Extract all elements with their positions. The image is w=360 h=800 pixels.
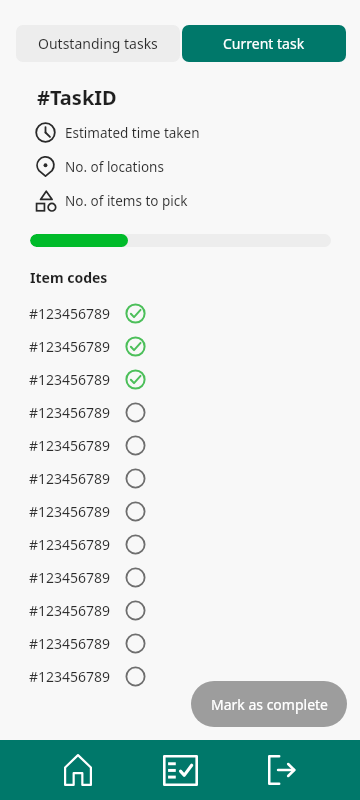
staticText: No. of items to pick — [65, 192, 188, 210]
button[interactable]: #123456789 — [0, 429, 360, 462]
staticText: #123456789 — [29, 436, 111, 455]
button[interactable]: Log out — [231, 740, 333, 800]
staticText: No. of locations — [65, 158, 164, 176]
staticText: #123456789 — [29, 469, 111, 488]
staticText: Outstanding tasks — [38, 34, 158, 53]
button[interactable]: #123456789 — [0, 462, 360, 495]
staticText: #123456789 — [29, 304, 111, 323]
staticText: Estimated time taken — [65, 124, 200, 142]
staticText: Mark as complete — [211, 695, 328, 714]
staticText: #123456789 — [29, 568, 111, 587]
staticText: #TaskID — [37, 84, 117, 111]
button[interactable]: #123456789 — [0, 660, 360, 693]
button[interactable]: #123456789 — [0, 330, 360, 363]
button[interactable]: #123456789 — [0, 396, 360, 429]
button[interactable]: Tasks — [129, 740, 231, 800]
staticText: #123456789 — [29, 634, 111, 653]
button[interactable]: #123456789 — [0, 594, 360, 627]
button[interactable]: #123456789 — [0, 528, 360, 561]
button[interactable]: Current task — [182, 25, 346, 62]
button[interactable]: #123456789 — [0, 627, 360, 660]
button[interactable]: Home — [27, 740, 129, 800]
staticText: #123456789 — [29, 403, 111, 422]
button[interactable]: Outstanding tasks — [16, 25, 180, 62]
button[interactable]: #123456789 — [0, 561, 360, 594]
staticText: #123456789 — [29, 667, 111, 686]
staticText: Current task — [223, 34, 305, 53]
staticText: #123456789 — [29, 601, 111, 620]
staticText: #123456789 — [29, 337, 111, 356]
staticText: #123456789 — [29, 502, 111, 521]
button[interactable]: #123456789 — [0, 495, 360, 528]
staticText: #123456789 — [29, 370, 111, 389]
staticText: Item codes — [30, 268, 108, 287]
button[interactable]: #123456789 — [0, 297, 360, 330]
staticText: #123456789 — [29, 535, 111, 554]
button[interactable]: #123456789 — [0, 363, 360, 396]
button[interactable]: Mark as complete — [191, 681, 347, 727]
